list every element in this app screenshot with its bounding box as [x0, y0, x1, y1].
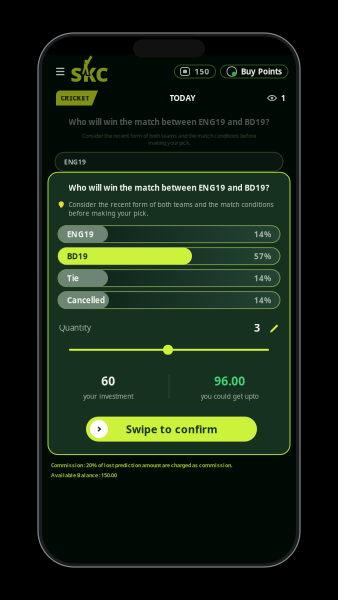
- button[interactable]: Edit quantity: [260, 322, 279, 333]
- staticText: Who will win the match between ENG19 and…: [68, 182, 269, 193]
- button[interactable]: Tie: [58, 270, 280, 287]
- button[interactable]: BD19: [58, 248, 280, 265]
- staticText: SKC: [70, 61, 108, 87]
- staticText: BD19: [67, 251, 88, 261]
- staticText: Cancelled: [67, 295, 105, 305]
- staticText: 3: [254, 321, 260, 335]
- staticText: Buy Points: [241, 66, 282, 77]
- staticText: Commission : 20% of lost prediction amou…: [51, 462, 232, 469]
- staticText: ENG19: [64, 157, 86, 166]
- staticText: 96.00: [214, 373, 245, 389]
- staticText: CRICKET: [60, 94, 89, 102]
- staticText: 57%: [254, 251, 271, 261]
- staticText: ENG19: [67, 229, 94, 239]
- button[interactable]: Cancelled: [58, 292, 280, 309]
- staticText: Swipe to confirm: [126, 422, 217, 436]
- staticText: TODAY: [169, 93, 195, 103]
- staticText: Consider the recent form of both teams a…: [82, 132, 256, 146]
- staticText: 14%: [254, 295, 271, 305]
- staticText: you could get upto: [201, 392, 259, 401]
- staticText: 60: [101, 373, 115, 389]
- staticText: 1: [281, 93, 286, 103]
- button[interactable]: Swipe to confirm: [86, 417, 257, 442]
- staticText: your investment: [83, 392, 133, 401]
- staticText: 150: [194, 66, 209, 77]
- staticText: Available Balance : 150.00: [51, 472, 117, 479]
- button[interactable]: 150: [174, 65, 215, 78]
- staticText: Who will win the match between ENG19 and…: [68, 116, 269, 127]
- staticText: Consider the recent form of both teams a…: [68, 200, 273, 218]
- staticText: 14%: [254, 229, 271, 239]
- button[interactable]: CRICKET: [56, 90, 98, 105]
- button[interactable]: Buy Points: [215, 65, 288, 78]
- staticText: 14%: [254, 273, 271, 283]
- button[interactable]: Viewers: [267, 93, 286, 103]
- staticText: Quantity: [59, 322, 91, 333]
- button[interactable]: ENG19: [58, 226, 280, 243]
- staticText: Tie: [67, 273, 79, 283]
- button[interactable]: Menu: [50, 62, 70, 80]
